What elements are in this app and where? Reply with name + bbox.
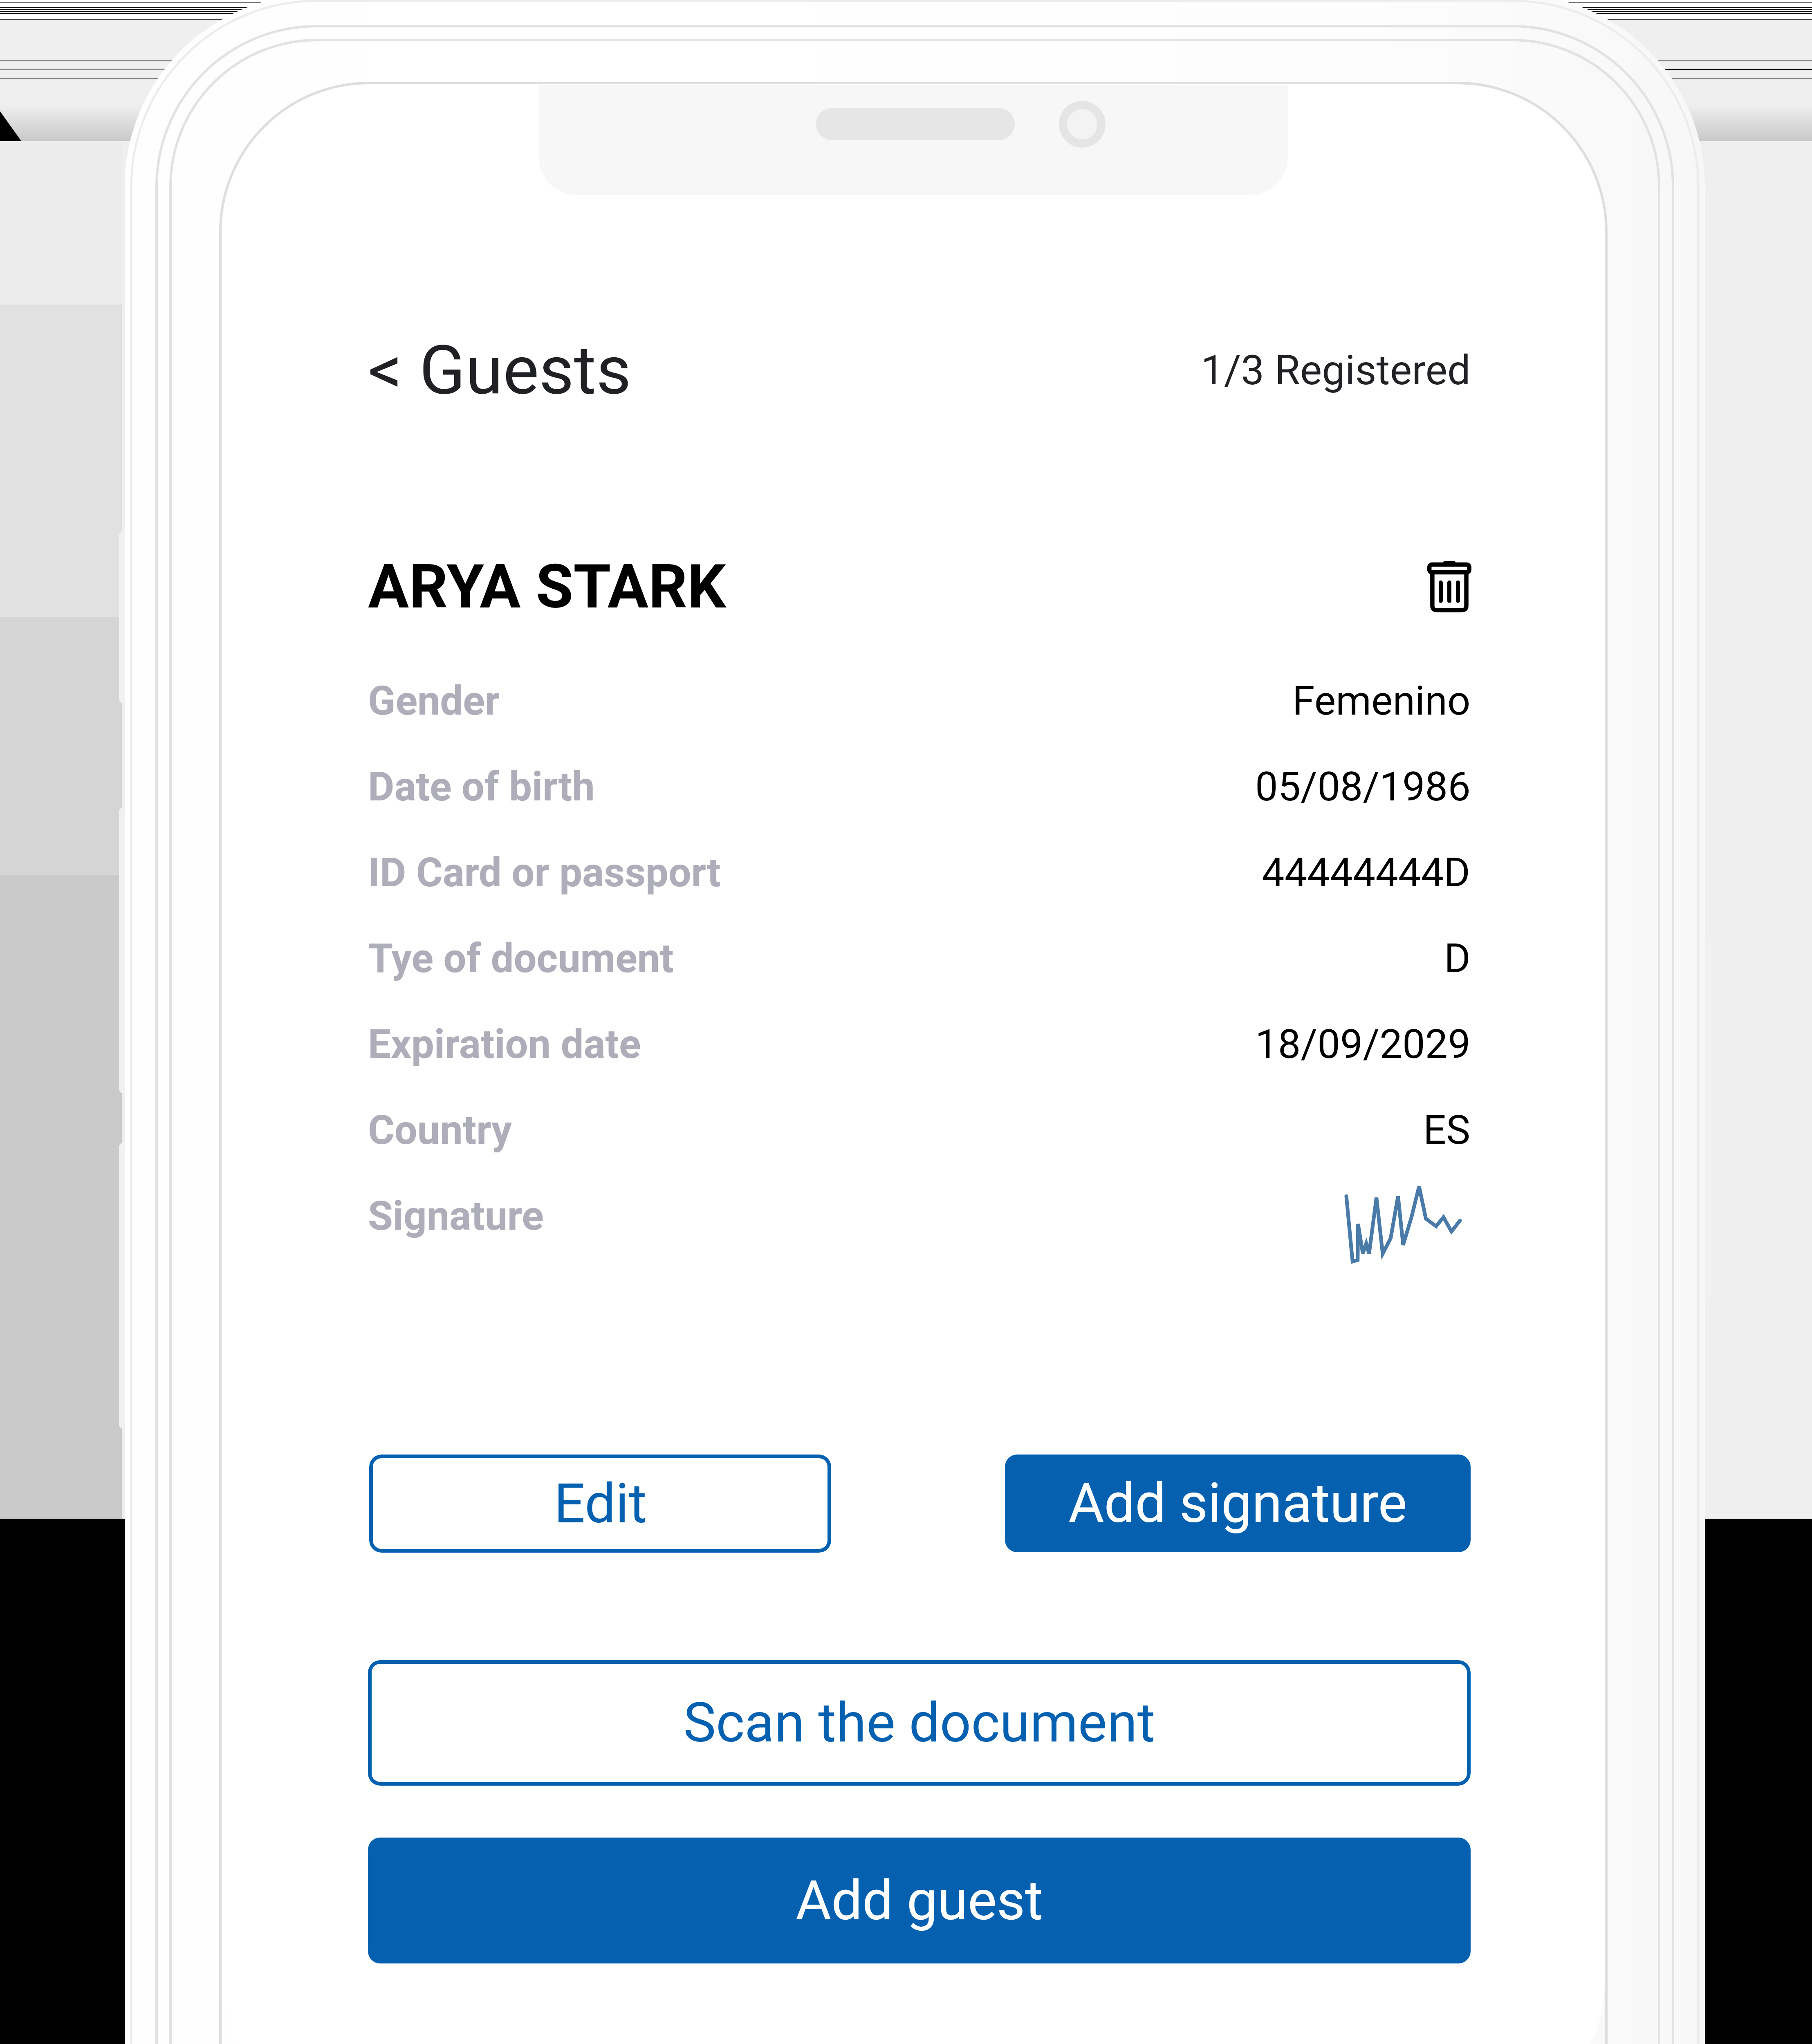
staticText: ES [1423,1106,1471,1154]
staticText: Signature [368,1192,544,1239]
staticText: Country [368,1106,512,1154]
staticText: Add signature [1068,1471,1407,1535]
button[interactable]: Add guest [368,1838,1471,1963]
staticText: 1/3 Registered [1201,346,1471,394]
button[interactable]: Delete guest [1404,542,1494,632]
staticText: 05/08/1986 [1255,763,1471,810]
staticText: Expiration date [368,1020,641,1068]
button[interactable]: Scan the document [368,1660,1471,1786]
staticText: D [1444,935,1471,982]
staticText: Edit [554,1472,647,1536]
staticText: Add guest [796,1869,1043,1933]
staticText: Femenino [1292,677,1471,724]
staticText: 44444444D [1262,849,1471,896]
staticText: 18/09/2029 [1255,1020,1471,1068]
staticText: Date of birth [368,763,595,810]
staticText: ID Card or passport [368,849,721,896]
staticText: Gender [368,677,500,724]
staticText: < Guests [368,330,631,410]
staticText: Tye of document [368,935,674,982]
button[interactable]: Edit [369,1455,831,1553]
button[interactable]: Add signature [1005,1455,1471,1552]
staticText: Scan the document [683,1691,1155,1755]
button[interactable]: < Guests [359,319,670,421]
staticText: ARYA STARK [368,551,726,623]
